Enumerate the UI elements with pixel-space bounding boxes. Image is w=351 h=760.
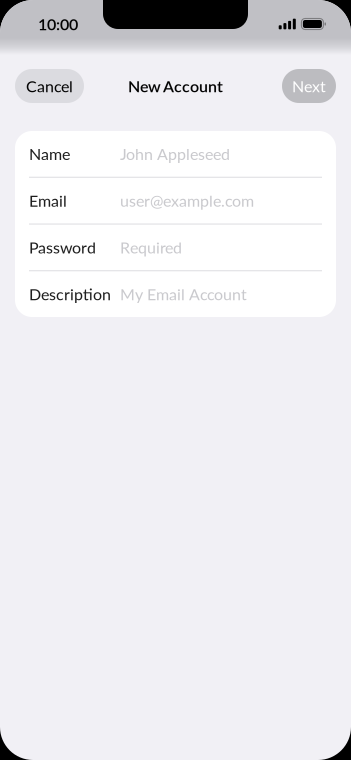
staticText: Description — [29, 284, 111, 304]
staticText: Required — [120, 238, 182, 257]
staticText: My Email Account — [120, 284, 247, 304]
staticText: New Account — [128, 76, 223, 96]
staticText: user@example.com — [120, 191, 254, 210]
staticText: 10:00 — [38, 14, 78, 34]
button[interactable]: Password — [15, 224, 336, 270]
staticText: Name — [29, 144, 70, 163]
staticText: John Appleseed — [120, 144, 230, 163]
button[interactable]: Name — [15, 131, 336, 177]
staticText: Email — [29, 191, 67, 210]
staticText: Cancel — [26, 76, 73, 96]
button[interactable]: Next — [282, 69, 336, 103]
button[interactable]: Description — [15, 271, 336, 317]
button[interactable]: Cancel — [15, 69, 84, 103]
button[interactable]: Email — [15, 178, 336, 224]
staticText: Password — [29, 238, 96, 257]
staticText: Next — [292, 76, 326, 96]
